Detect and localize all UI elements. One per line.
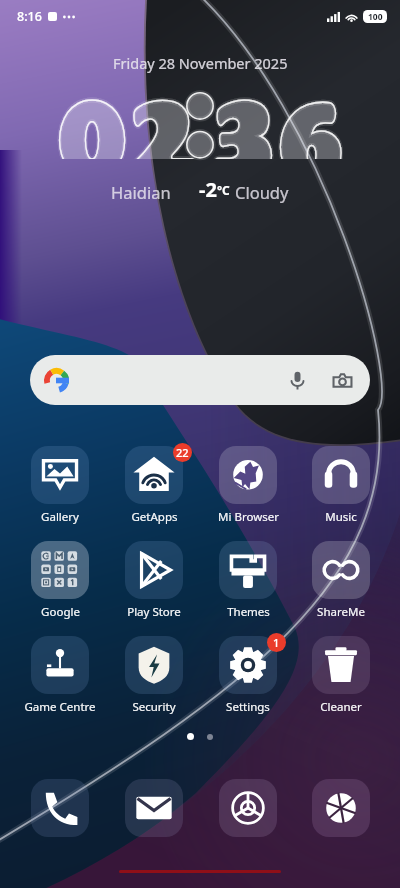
- button[interactable]: Play Store: [107, 541, 201, 620]
- button[interactable]: Chrome: [201, 779, 295, 837]
- button[interactable]: Phone: [13, 779, 107, 837]
- staticText: 02: [49, 71, 204, 159]
- staticText: Mi Browser: [218, 509, 279, 525]
- staticText: Haidian: [111, 181, 171, 203]
- button[interactable]: Voice search: [286, 369, 309, 392]
- button[interactable]: Mi Browser: [201, 446, 295, 525]
- button[interactable]: Game Centre: [13, 636, 107, 715]
- staticText: GetApps: [131, 509, 178, 525]
- staticText: Cleaner: [320, 699, 362, 715]
- staticText: 36: [200, 71, 355, 159]
- button[interactable]: Gallery: [13, 446, 107, 525]
- staticText: Music: [325, 509, 357, 525]
- button[interactable]: Themes: [201, 541, 295, 620]
- staticText: Cloudy: [235, 181, 289, 203]
- staticText: 8:16: [17, 8, 42, 25]
- button[interactable]: 22: [107, 446, 201, 525]
- button[interactable]: 1: [201, 636, 295, 715]
- button[interactable]: Security: [107, 636, 201, 715]
- button[interactable]: Mail: [107, 779, 201, 837]
- button[interactable]: Cleaner: [295, 636, 386, 715]
- staticText: -2: [199, 176, 217, 203]
- staticText: 100: [368, 11, 383, 23]
- staticText: °C: [217, 182, 230, 198]
- staticText: Google: [41, 604, 80, 620]
- button[interactable]: Google: [13, 541, 107, 620]
- staticText: Gallery: [41, 509, 79, 525]
- button[interactable]: Voice search: [30, 355, 370, 405]
- staticText: 02: [49, 71, 204, 159]
- button[interactable]: Music: [295, 446, 386, 525]
- staticText: Play Store: [127, 604, 181, 620]
- staticText: Settings: [226, 699, 270, 715]
- staticText: 36: [200, 71, 355, 159]
- button[interactable]: Google Lens: [331, 369, 354, 392]
- staticText: 1: [273, 635, 280, 650]
- staticText: ShareMe: [317, 604, 365, 620]
- button[interactable]: Camera: [295, 779, 386, 837]
- staticText: Game Centre: [24, 699, 96, 715]
- button[interactable]: ShareMe: [295, 541, 386, 620]
- staticText: 22: [176, 445, 189, 460]
- staticText: Themes: [227, 604, 270, 620]
- staticText: 02: [49, 71, 204, 159]
- staticText: 36: [200, 71, 355, 159]
- staticText: Security: [132, 699, 176, 715]
- staticText: Friday 28 November 2025: [113, 53, 288, 73]
